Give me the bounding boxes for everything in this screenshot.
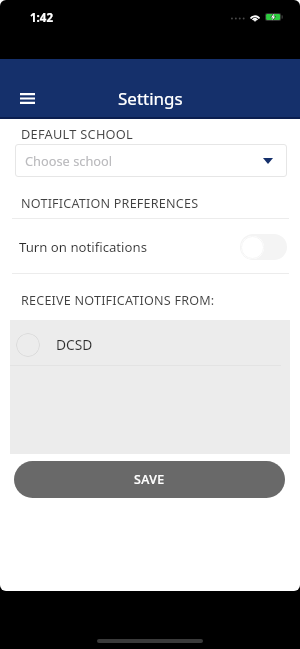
button[interactable]: DCSD bbox=[10, 322, 290, 367]
staticText: DCSD bbox=[56, 335, 93, 354]
staticText: Turn on notifications bbox=[19, 238, 147, 256]
button[interactable]: SAVE bbox=[14, 461, 285, 498]
staticText: NOTIFICATION PREFERENCES bbox=[21, 195, 199, 212]
staticText: SAVE bbox=[134, 471, 165, 488]
staticText: DEFAULT SCHOOL bbox=[21, 125, 134, 142]
staticText: 1:42 bbox=[30, 10, 53, 26]
staticText: Choose school bbox=[25, 152, 113, 169]
button[interactable]: Choose school bbox=[15, 144, 287, 177]
staticText: RECEIVE NOTIFICATIONS FROM: bbox=[21, 292, 215, 309]
button[interactable]: Open navigation menu bbox=[7, 78, 47, 118]
staticText: Settings bbox=[118, 87, 183, 110]
button[interactable]: Turn on notifications bbox=[0, 219, 300, 273]
